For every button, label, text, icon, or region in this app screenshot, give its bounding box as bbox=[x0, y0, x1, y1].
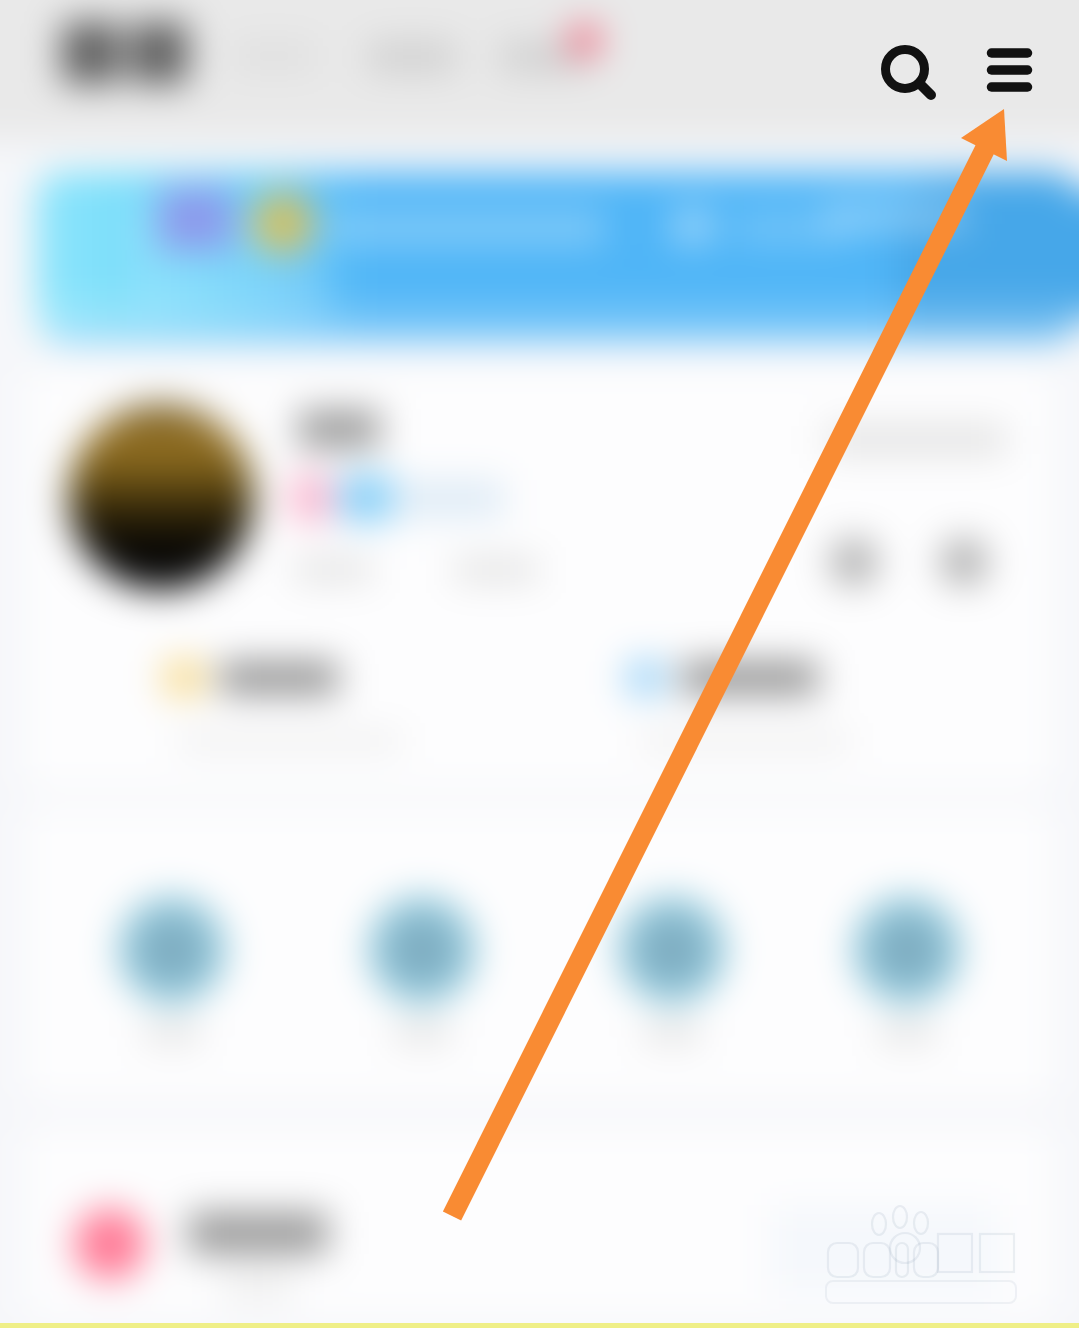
button[interactable]: Quick action 4 bbox=[821, 870, 989, 1070]
button[interactable]: Wallet bbox=[130, 640, 430, 760]
button[interactable]: Quick action 3 bbox=[586, 870, 754, 1070]
button[interactable]: Orders bbox=[590, 640, 890, 760]
button[interactable]: My tab, selected bbox=[50, 10, 210, 120]
button[interactable]: Open navigation menu bbox=[970, 28, 1050, 108]
button[interactable]: Messages bbox=[818, 520, 902, 604]
button[interactable]: Settings bbox=[790, 412, 1030, 482]
button[interactable]: Quick action 2 bbox=[336, 870, 504, 1070]
button[interactable]: Fourth tab, new items bbox=[490, 10, 616, 120]
button[interactable]: Favourites bbox=[40, 1170, 540, 1310]
button[interactable]: Profile bbox=[40, 398, 600, 628]
button[interactable]: Third tab bbox=[356, 10, 472, 120]
button[interactable]: Notifications bbox=[928, 520, 1012, 604]
button[interactable]: Search bbox=[866, 28, 946, 108]
button[interactable]: Quick action 1 bbox=[86, 870, 254, 1070]
button[interactable]: Promotion banner bbox=[36, 172, 1043, 340]
